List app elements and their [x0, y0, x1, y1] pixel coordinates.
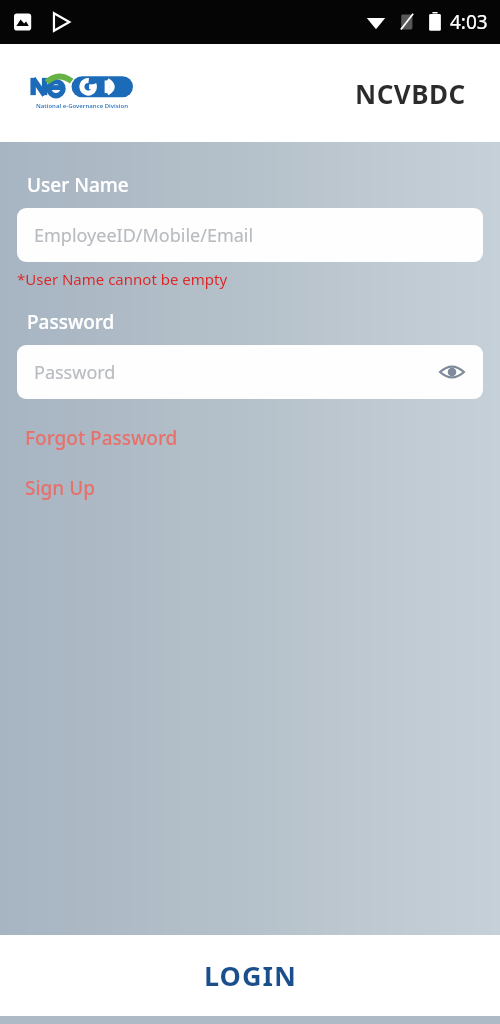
button[interactable]: Forgot Password	[17, 421, 186, 455]
button[interactable]: Password	[17, 345, 483, 399]
staticText: *User Name cannot be empty	[17, 269, 228, 289]
staticText: Password	[34, 360, 116, 385]
staticText: User Name	[27, 172, 129, 198]
button[interactable]: Sign Up	[17, 471, 104, 505]
button[interactable]: Show password	[435, 355, 469, 389]
staticText: National e-Governance Division	[36, 102, 128, 110]
button[interactable]: EmployeeID/Mobile/Email	[17, 208, 483, 262]
staticText: Sign Up	[25, 475, 96, 501]
staticText: Password	[27, 309, 115, 335]
staticText: LOGIN	[204, 957, 297, 994]
staticText: EmployeeID/Mobile/Email	[34, 223, 254, 248]
staticText: Forgot Password	[25, 425, 178, 451]
staticText: 4:03	[450, 9, 488, 35]
button[interactable]: LOGIN	[0, 935, 500, 1016]
staticText: NCVBDC	[355, 76, 466, 111]
